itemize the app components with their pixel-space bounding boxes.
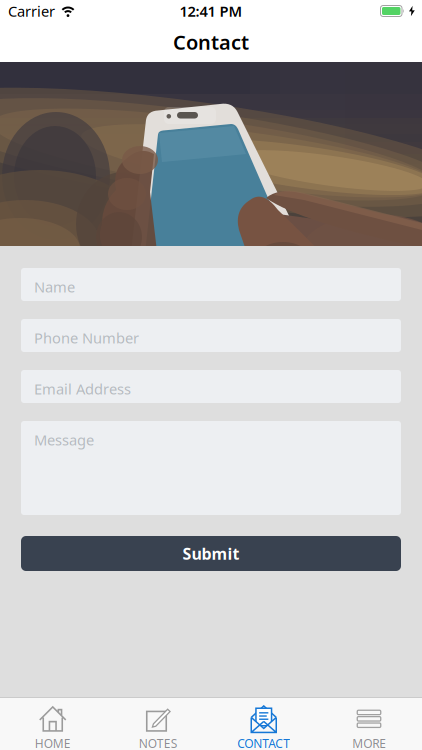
staticText: Phone Number	[34, 328, 139, 347]
button[interactable]: Message	[21, 421, 401, 515]
staticText: Contact	[173, 29, 249, 55]
staticText: MORE	[352, 735, 386, 750]
staticText: Email Address	[34, 379, 131, 398]
button[interactable]: HOME	[0, 696, 105, 750]
staticText: Submit	[182, 543, 239, 564]
staticText: Carrier	[8, 1, 55, 21]
button[interactable]: Email Address	[21, 370, 401, 403]
staticText: Name	[34, 277, 75, 296]
button[interactable]: MORE	[316, 696, 422, 750]
button[interactable]: CONTACT	[211, 696, 316, 750]
staticText: 12:41 PM	[179, 1, 242, 21]
button[interactable]: NOTES	[105, 696, 211, 750]
staticText: NOTES	[139, 735, 178, 750]
button[interactable]: Submit	[21, 536, 401, 571]
button[interactable]: Phone Number	[21, 319, 401, 352]
staticText: CONTACT	[237, 735, 290, 750]
button[interactable]: Name	[21, 268, 401, 301]
staticText: Message	[34, 430, 94, 449]
staticText: HOME	[35, 735, 71, 750]
